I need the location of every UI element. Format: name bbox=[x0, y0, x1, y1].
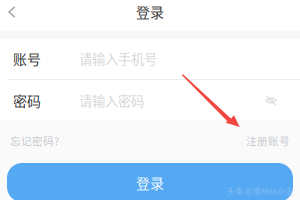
button[interactable]: Show password bbox=[257, 87, 285, 114]
button[interactable]: 注册账号 bbox=[246, 119, 300, 154]
staticText: 请输入手机号 bbox=[79, 49, 157, 68]
button[interactable]: 忘记密码? bbox=[0, 119, 59, 154]
staticText: 注册账号 bbox=[246, 133, 290, 148]
staticText: 账号 bbox=[13, 48, 41, 69]
button[interactable]: 登录 bbox=[7, 163, 293, 200]
staticText: 头条 @雪Miss小主 bbox=[227, 185, 293, 197]
staticText: 登录 bbox=[136, 172, 164, 193]
staticText: 忘记密码? bbox=[10, 133, 59, 148]
button[interactable]: 账号 bbox=[0, 38, 300, 79]
button[interactable]: Back bbox=[0, 0, 24, 31]
staticText: 请输入密码 bbox=[79, 91, 144, 110]
staticText: 登录 bbox=[136, 1, 164, 22]
staticText: 密码 bbox=[13, 90, 41, 111]
